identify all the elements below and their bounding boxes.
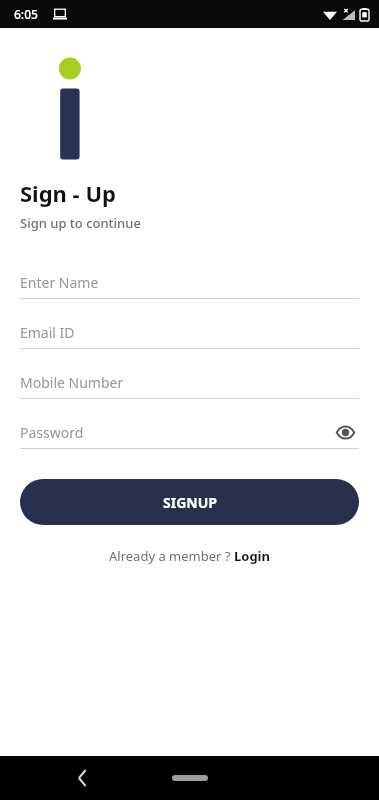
staticText: SIGNUP [163, 493, 217, 512]
staticText: Sign - Up [20, 178, 116, 208]
staticText: Enter Name [20, 273, 99, 292]
staticText: Mobile Number [20, 373, 124, 392]
button[interactable]: Show password [331, 418, 359, 446]
staticText: Login [234, 547, 270, 565]
button[interactable]: Already a member ? [109, 547, 270, 565]
button[interactable]: Email ID [20, 316, 359, 349]
staticText: Password [20, 423, 84, 442]
button[interactable]: Home [172, 775, 208, 781]
staticText: Email ID [20, 323, 75, 342]
button[interactable]: Enter Name [20, 266, 359, 299]
staticText: 6:05 [14, 6, 38, 22]
button[interactable]: Mobile Number [20, 366, 359, 399]
button[interactable]: SIGNUP [20, 479, 359, 525]
button[interactable]: Back [68, 764, 96, 792]
button[interactable]: Password [20, 416, 359, 449]
staticText: Already a member ? [109, 547, 234, 565]
staticText: Sign up to continue [20, 214, 141, 232]
